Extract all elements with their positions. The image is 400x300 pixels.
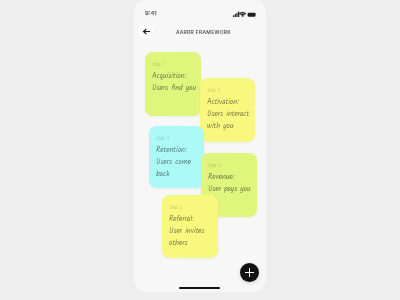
staticText: Step 5 <box>169 204 182 212</box>
staticText: Retention: <box>156 144 187 156</box>
staticText: Users interact <box>207 108 250 120</box>
staticText: AARRR FRAMEWORK <box>176 29 232 35</box>
button[interactable]: Step 2 <box>200 78 255 142</box>
staticText: User invites <box>169 225 205 237</box>
button[interactable]: Step 4 <box>201 153 257 217</box>
staticText: Step 4 <box>208 162 221 170</box>
button[interactable]: Step 3 <box>149 126 204 188</box>
staticText: Acquisition: <box>152 70 187 82</box>
button[interactable]: Add <box>240 263 259 282</box>
staticText: User pays you <box>208 183 251 195</box>
staticText: Step 3 <box>156 135 170 143</box>
button[interactable]: Step 1 <box>145 52 201 116</box>
staticText: with you <box>207 120 234 132</box>
staticText: Users come <box>156 156 191 168</box>
staticText: Activation: <box>207 96 239 108</box>
staticText: Referral: <box>169 213 194 225</box>
staticText: 9:41 <box>145 9 157 16</box>
button[interactable]: Back <box>138 23 154 39</box>
staticText: Users find you <box>152 82 197 94</box>
staticText: Revenue: <box>208 171 235 183</box>
button[interactable]: Step 5 <box>162 195 218 258</box>
staticText: others <box>169 237 188 249</box>
staticText: back <box>156 168 170 180</box>
staticText: Step 1 <box>152 61 164 69</box>
staticText: Step 2 <box>207 87 221 95</box>
